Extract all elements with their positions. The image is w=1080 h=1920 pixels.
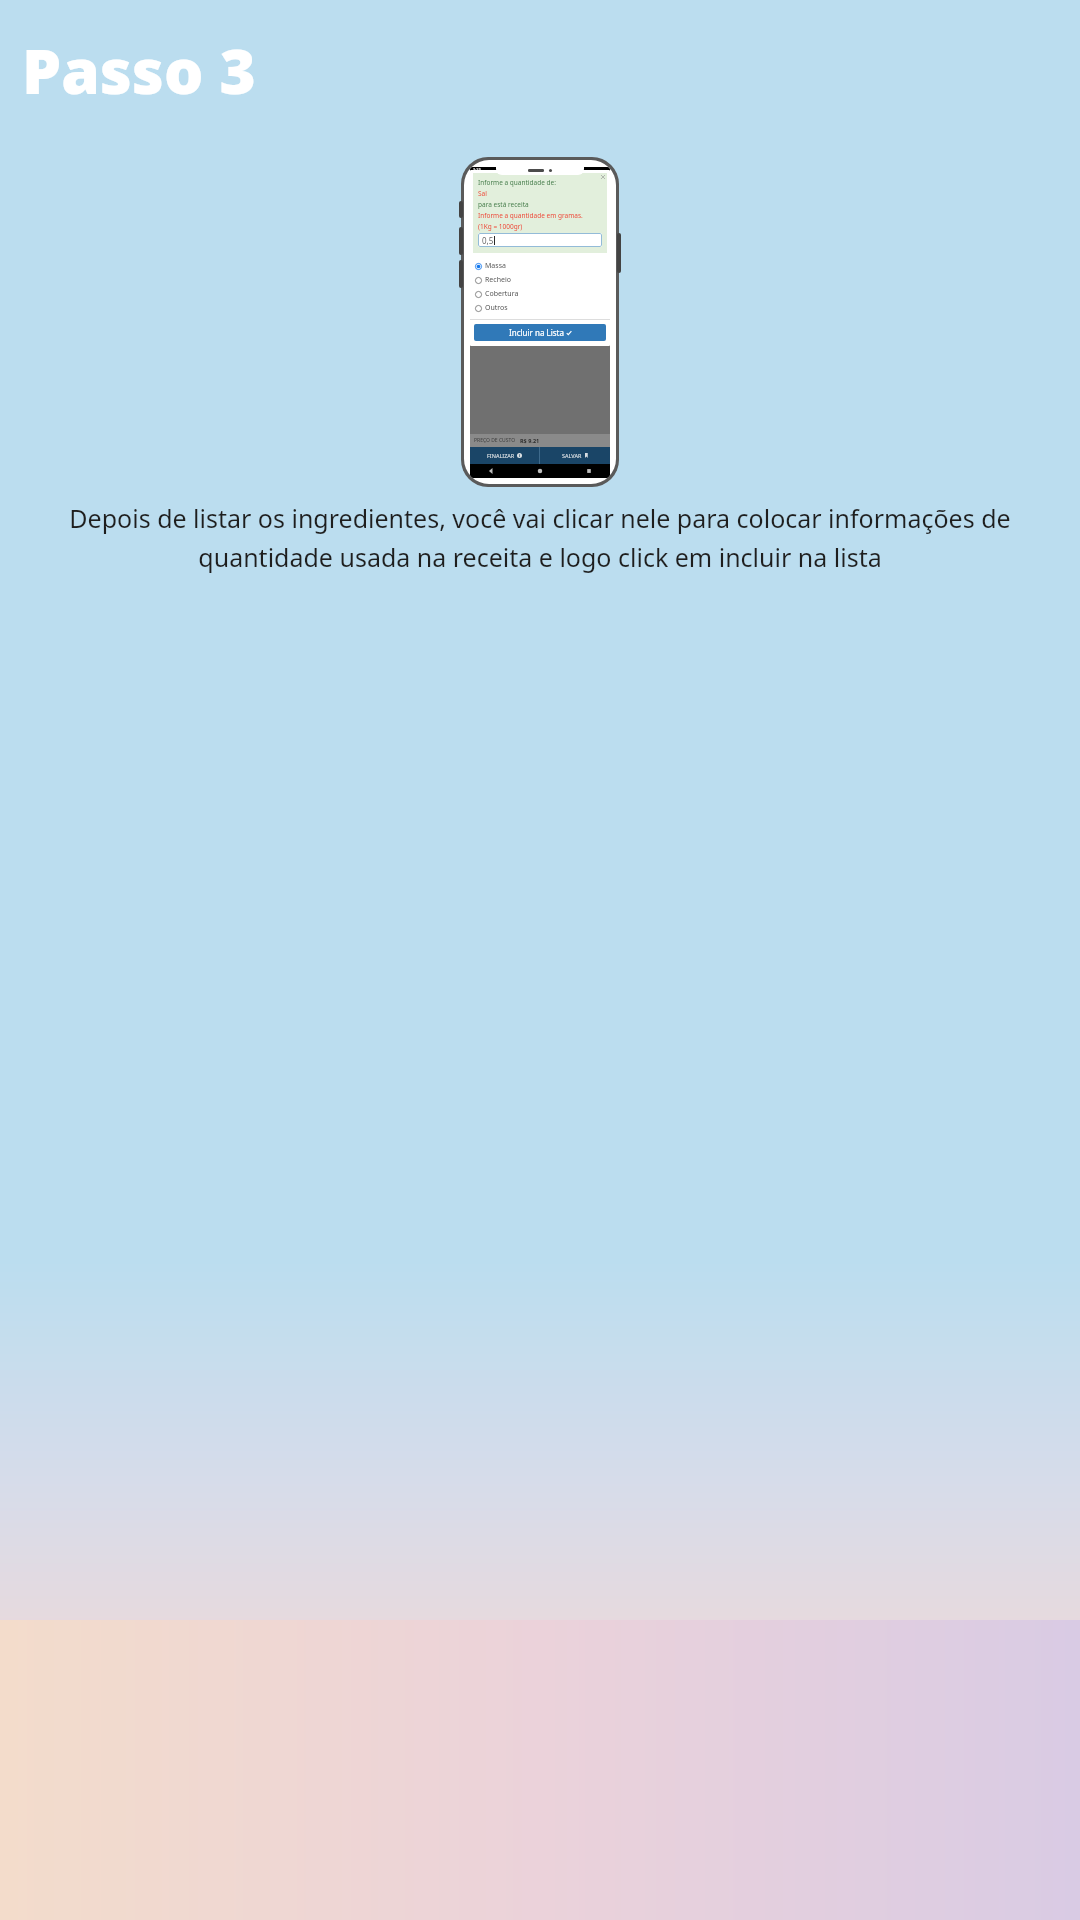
staticText: Depois de listar os ingredientes, você v… — [22, 501, 1058, 574]
button[interactable]: FINALIZAR — [470, 447, 539, 464]
staticText: (1Kg = 1000gr) — [478, 222, 523, 231]
staticText: 0,5 — [482, 235, 494, 246]
button[interactable]: Fechar — [599, 173, 606, 180]
staticText: Ovos — [474, 265, 487, 272]
button[interactable]: Cobertura — [475, 287, 610, 301]
button[interactable]: SALVAR — [540, 447, 610, 464]
staticText: Massa — [485, 261, 506, 271]
button[interactable]: Outros — [475, 301, 610, 315]
staticText: Outros — [485, 303, 508, 313]
staticText: 3:35 — [473, 167, 481, 172]
staticText: Informe a quantidade de: — [478, 178, 556, 187]
button[interactable]: 0,5 — [478, 233, 602, 247]
staticText: FINALIZAR — [487, 452, 515, 459]
button[interactable]: Recheio — [475, 273, 610, 287]
button[interactable]: Massa — [475, 259, 610, 273]
button[interactable]: Recentes — [586, 468, 592, 474]
button[interactable]: Ovos — [470, 259, 610, 277]
staticText: Incluir na Lista — [509, 327, 564, 338]
staticText: PREÇO DE CUSTO — [474, 437, 516, 444]
staticText: para está receita — [478, 200, 529, 209]
button[interactable]: Início — [537, 468, 543, 474]
staticText: Informe a quantidade em gramas. — [478, 211, 583, 220]
staticText: SALVAR — [562, 452, 582, 459]
staticText: Passo 3 — [22, 28, 256, 112]
staticText: Recheio — [485, 275, 511, 285]
button[interactable]: Incluir na Lista — [474, 324, 606, 341]
staticText: Cobertura — [485, 289, 519, 299]
staticText: R$ 9.21 — [520, 437, 540, 444]
staticText: Sal — [478, 189, 487, 198]
button[interactable]: Voltar — [488, 468, 494, 474]
